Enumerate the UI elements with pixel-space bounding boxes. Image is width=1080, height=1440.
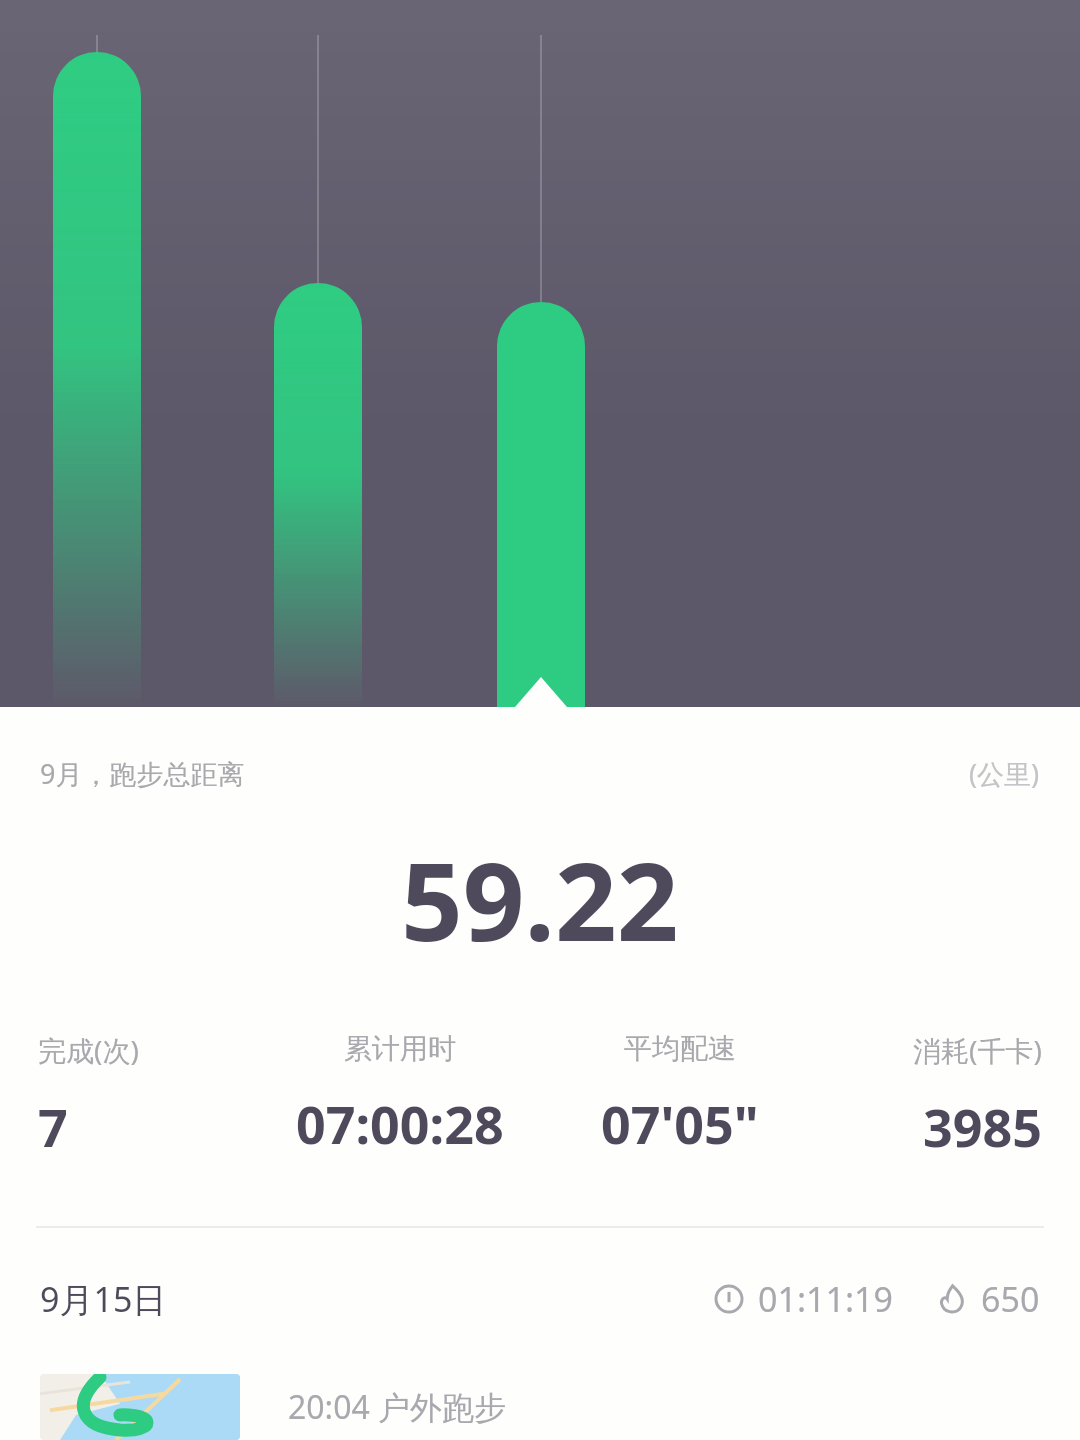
button[interactable]: 9月15日 bbox=[0, 1228, 1080, 1322]
staticText: 完成(次) bbox=[38, 1031, 139, 1069]
staticText: 平均配速 bbox=[624, 1031, 736, 1066]
staticText: 07:00:28 bbox=[296, 1088, 504, 1159]
staticText: 7 bbox=[38, 1091, 68, 1162]
other: Duration bbox=[714, 1284, 744, 1314]
staticText: 20:04 户外跑步 bbox=[288, 1385, 507, 1429]
staticText: 59.22 bbox=[401, 826, 679, 973]
staticText: 07'05" bbox=[601, 1088, 759, 1159]
staticText: 01:11:19 bbox=[758, 1276, 893, 1322]
staticText: 9月15日 bbox=[40, 1276, 167, 1322]
button[interactable]: 20:04 户外跑步 bbox=[0, 1374, 1080, 1440]
staticText: 650 bbox=[981, 1276, 1040, 1322]
staticText: 3985 bbox=[923, 1091, 1042, 1162]
staticText: 9月，跑步总距离 bbox=[40, 755, 245, 792]
staticText: 消耗(千卡) bbox=[913, 1031, 1042, 1069]
staticText: 累计用时 bbox=[344, 1031, 456, 1066]
staticText: (公里) bbox=[969, 755, 1040, 792]
other: Calories bbox=[937, 1284, 967, 1314]
